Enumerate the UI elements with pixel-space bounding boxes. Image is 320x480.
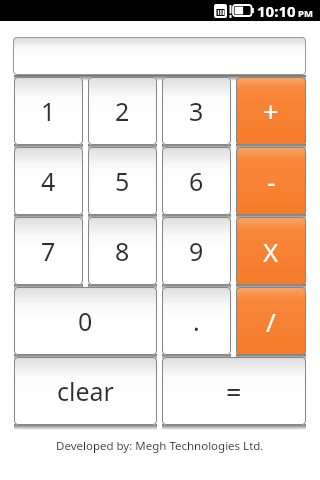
button[interactable]: = xyxy=(162,357,306,425)
button[interactable]: 4 xyxy=(14,147,83,215)
button[interactable]: . xyxy=(162,287,231,355)
staticText: 4 xyxy=(41,164,56,198)
staticText: + xyxy=(263,93,279,130)
button[interactable]: 0 xyxy=(14,287,157,355)
button[interactable]: / xyxy=(236,287,306,355)
button[interactable]: X xyxy=(236,217,306,285)
button[interactable]: clear xyxy=(14,357,157,425)
button[interactable]: + xyxy=(236,77,306,145)
button[interactable]: 5 xyxy=(88,147,157,215)
button[interactable]: 8 xyxy=(88,217,157,285)
button[interactable]: 7 xyxy=(14,217,83,285)
staticText: 10:10 PM xyxy=(257,1,313,21)
staticText: 2 xyxy=(115,94,130,128)
staticText: 6 xyxy=(189,164,204,198)
staticText: 1 xyxy=(41,94,56,128)
staticText: 3 xyxy=(189,94,204,128)
button[interactable]: 6 xyxy=(162,147,231,215)
button[interactable]: 1 xyxy=(14,77,83,145)
staticText: = xyxy=(226,373,242,410)
button[interactable]: 10:10 PM xyxy=(257,0,313,21)
staticText: 8 xyxy=(115,234,130,268)
staticText: - xyxy=(267,163,276,200)
staticText: Developed by: Megh Technologies Ltd. xyxy=(56,438,264,454)
button[interactable] xyxy=(13,37,306,75)
staticText: / xyxy=(266,304,276,339)
staticText: clear xyxy=(57,374,114,408)
staticText: 7 xyxy=(41,234,56,268)
staticText: . xyxy=(193,304,200,338)
staticText: X xyxy=(263,234,279,269)
button[interactable]: 9 xyxy=(162,217,231,285)
button[interactable]: - xyxy=(236,147,306,215)
staticText: 5 xyxy=(115,164,130,198)
staticText: 9 xyxy=(189,234,204,268)
button[interactable]: 3 xyxy=(162,77,231,145)
button[interactable]: 2 xyxy=(88,77,157,145)
staticText: 0 xyxy=(78,304,93,338)
